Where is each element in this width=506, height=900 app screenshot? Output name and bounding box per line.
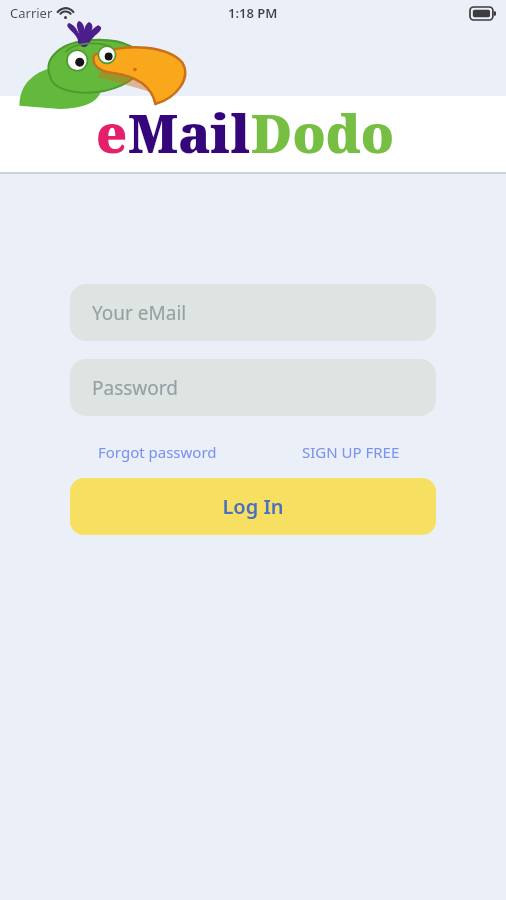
staticText: Password <box>92 375 178 401</box>
button[interactable]: Your eMail <box>70 284 436 341</box>
button[interactable]: Forgot password <box>70 436 253 468</box>
staticText: Dodo <box>251 97 395 168</box>
staticText: Your eMail <box>92 300 187 326</box>
button[interactable]: Password <box>70 359 436 416</box>
staticText: 1:18 PM <box>228 4 278 22</box>
other: eMailDodo logo <box>16 22 186 104</box>
button[interactable]: Log In <box>70 478 436 535</box>
staticText: Mail <box>128 97 251 168</box>
staticText: SIGN UP FREE <box>302 442 400 462</box>
staticText: Log In <box>222 493 284 520</box>
staticText: Forgot password <box>98 442 217 462</box>
staticText: Carrier <box>10 4 53 22</box>
staticText: e <box>96 97 128 168</box>
button[interactable]: SIGN UP FREE <box>253 436 436 468</box>
